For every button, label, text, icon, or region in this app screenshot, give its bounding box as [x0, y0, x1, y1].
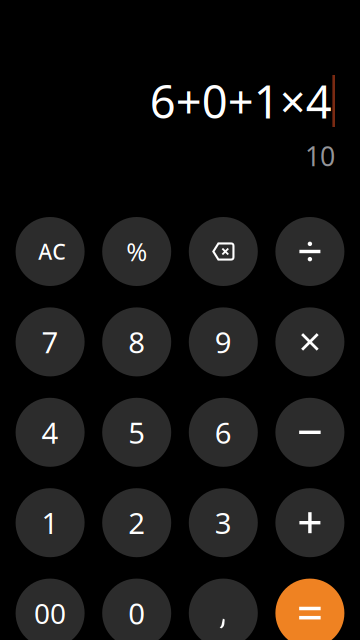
staticText: 0: [128, 594, 145, 633]
button[interactable]: 0: [102, 579, 171, 640]
button[interactable]: 1: [16, 488, 85, 557]
staticText: 00: [34, 594, 66, 632]
staticText: 5: [128, 413, 145, 452]
button[interactable]: 2: [102, 488, 171, 557]
button[interactable]: 00: [16, 579, 85, 640]
staticText: 10: [305, 138, 335, 174]
staticText: %: [126, 235, 147, 268]
button[interactable]: Decimal comma: [189, 579, 258, 640]
staticText: 4: [42, 413, 59, 452]
staticText: 2: [128, 503, 145, 542]
button[interactable]: 4: [16, 398, 85, 467]
staticText: 9: [215, 322, 232, 361]
button[interactable]: Multiply: [275, 307, 344, 376]
button[interactable]: 8: [102, 307, 171, 376]
button[interactable]: 7: [16, 307, 85, 376]
staticText: 6+0+1×4: [150, 71, 332, 131]
button[interactable]: 3: [189, 488, 258, 557]
staticText: 6: [215, 413, 232, 452]
staticText: 8: [128, 322, 145, 361]
staticText: AC: [38, 237, 66, 266]
button[interactable]: 6: [189, 398, 258, 467]
button[interactable]: %: [102, 217, 171, 286]
button[interactable]: AC: [16, 217, 85, 286]
button[interactable]: 5: [102, 398, 171, 467]
staticText: 7: [42, 322, 59, 361]
staticText: 1: [42, 503, 59, 542]
staticText: 3: [215, 503, 232, 542]
button[interactable]: Divide: [275, 217, 344, 286]
button[interactable]: Minus: [275, 398, 344, 467]
button[interactable]: Delete: [189, 217, 258, 286]
button[interactable]: 9: [189, 307, 258, 376]
button[interactable]: Plus: [275, 488, 344, 557]
button[interactable]: Equals: [275, 579, 344, 640]
